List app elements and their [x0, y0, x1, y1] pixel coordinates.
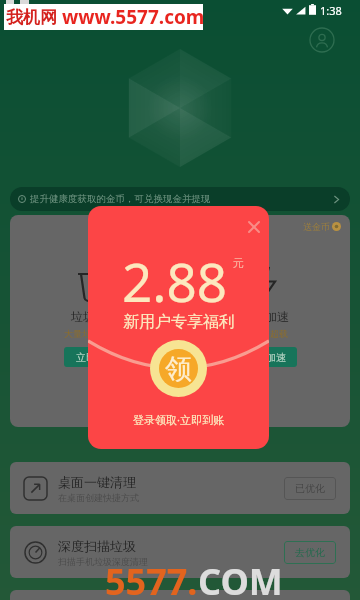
staticText: 1:38: [320, 3, 342, 17]
button[interactable]: 立即加速: [234, 347, 297, 367]
button[interactable]: 桌面一键清理: [10, 462, 350, 514]
staticText: COM: [198, 557, 283, 600]
staticText: 内存已超载: [243, 328, 288, 339]
staticText: 深度扫描垃圾: [58, 538, 136, 554]
button[interactable]: [10, 590, 350, 600]
staticText: 扫描手机垃圾深度清理: [58, 556, 148, 567]
staticText: 立即清理: [76, 351, 116, 364]
staticText: 立即加速: [246, 351, 286, 364]
staticText: 提升健康度获取的金币，可兑换现金并提现: [30, 193, 211, 205]
button[interactable]: 已优化: [284, 477, 336, 500]
button[interactable]: 深度扫描垃圾: [10, 526, 350, 578]
staticText: 领: [165, 352, 192, 386]
staticText: 登录领取·立即到账: [133, 412, 224, 427]
button[interactable]: Profile: [309, 27, 335, 53]
button[interactable]: 去优化: [284, 541, 336, 564]
staticText: 手机加速: [241, 309, 289, 324]
button[interactable]: 领: [150, 340, 207, 397]
staticText: 桌面一键清理: [58, 474, 136, 490]
staticText: 垃圾清理: [71, 309, 119, 324]
staticText: 元: [233, 256, 244, 270]
staticText: 在桌面创建快捷方式: [58, 492, 139, 503]
staticText: 大量垃圾待清理: [64, 328, 127, 339]
staticText: 新用户专享福利: [123, 312, 235, 332]
button[interactable]: 送金币: [303, 221, 341, 232]
staticText: 5577.: [105, 557, 198, 600]
staticText: 去优化: [295, 546, 325, 559]
staticText: 送金币: [303, 221, 330, 232]
staticText: 我机网: [6, 7, 57, 28]
button[interactable]: Close: [245, 218, 263, 236]
staticText: 2.88: [122, 245, 228, 317]
staticText: www.5577.com: [62, 4, 203, 30]
staticText: 已优化: [295, 482, 325, 495]
button[interactable]: 提升健康度获取的金币，可兑换现金并提现: [10, 187, 350, 211]
button[interactable]: 立即清理: [64, 347, 127, 367]
